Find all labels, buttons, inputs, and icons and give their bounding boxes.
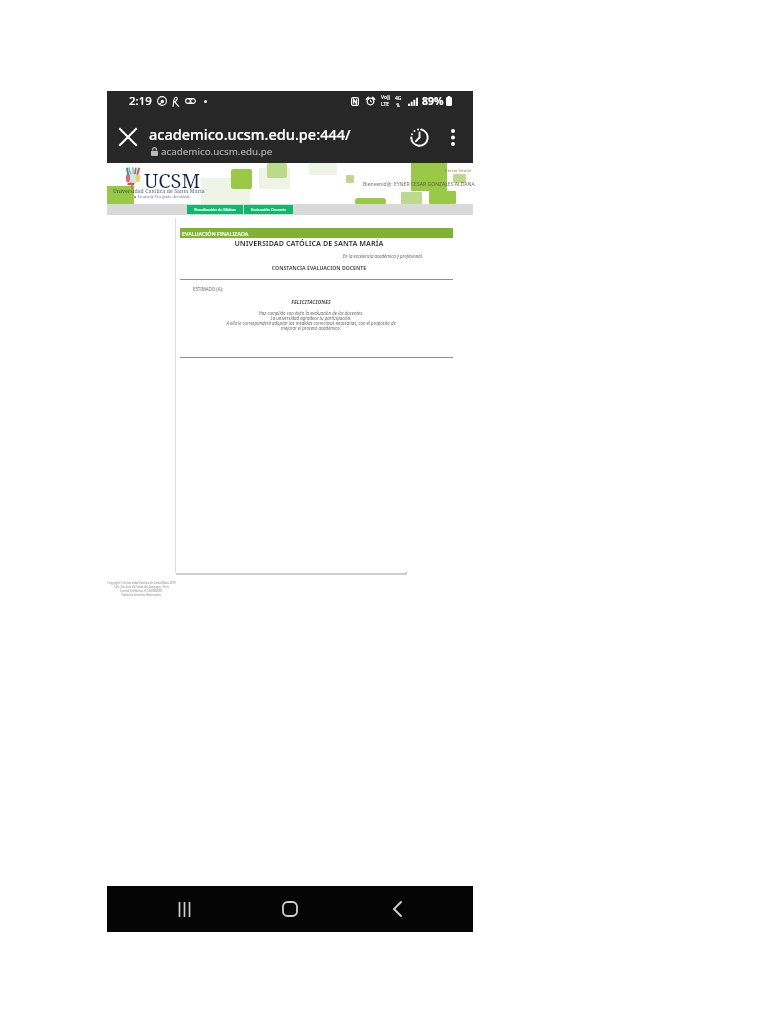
button[interactable]: Recents <box>154 886 214 932</box>
staticText: UCSM <box>144 167 201 194</box>
staticText: En la excelencia académica y profesional <box>302 253 422 259</box>
staticText: CONSTANCIA EVALUACION DOCENTE <box>229 264 409 271</box>
staticText: Central Telefónica: (51-54)382038 <box>120 589 162 593</box>
staticText: ESTIMADO (A): <box>193 286 223 292</box>
staticText: Universidad Católica de Santa María <box>113 187 205 194</box>
staticText: UNIVERSIDAD CATÓLICA DE SANTA MARÍA <box>189 238 429 248</box>
staticText: ▪ Escuela de Post-grado - Acreditada <box>134 195 190 199</box>
button[interactable]: Cerrar Sesión <box>445 168 472 174</box>
staticText: Urb. San José s/n Umacollo Arequipa - Pe… <box>114 585 169 589</box>
staticText: Haz cumplido con éxito la evaluación de … <box>216 310 406 331</box>
button[interactable]: Visualización de Sílabus <box>187 205 243 214</box>
staticText: 4G <box>395 95 402 102</box>
staticText: academico.ucsm.edu.pe:444/ <box>149 124 351 144</box>
staticText: academico.ucsm.edu.pe <box>161 145 273 158</box>
staticText: 89% <box>422 94 444 108</box>
button[interactable]: More options <box>439 111 467 163</box>
staticText: Visualización de Sílabus <box>194 207 236 212</box>
button[interactable]: History <box>399 111 439 163</box>
staticText: ⇅ <box>396 102 401 108</box>
staticText: Copyright © Universidad Católica de Sant… <box>107 581 176 585</box>
button[interactable]: Back <box>367 886 427 932</box>
staticText: FELICITACIONES <box>231 298 391 305</box>
button[interactable]: Evaluación Docente <box>244 205 293 214</box>
staticText: LTE <box>381 101 390 108</box>
staticText: Evaluación Docente <box>251 207 286 212</box>
button[interactable]: Home <box>260 886 320 932</box>
staticText: Vo)) <box>381 94 390 101</box>
staticText: 2:19 <box>129 93 152 109</box>
staticText: Todos los derechos Reservados <box>121 593 161 597</box>
staticText: Bienvenid@: EYNER CESAR GONZALES ALDANA <box>363 181 475 188</box>
staticText: EVALUACIÓN FINALIZADA <box>182 230 249 237</box>
button[interactable]: Close <box>107 111 149 163</box>
